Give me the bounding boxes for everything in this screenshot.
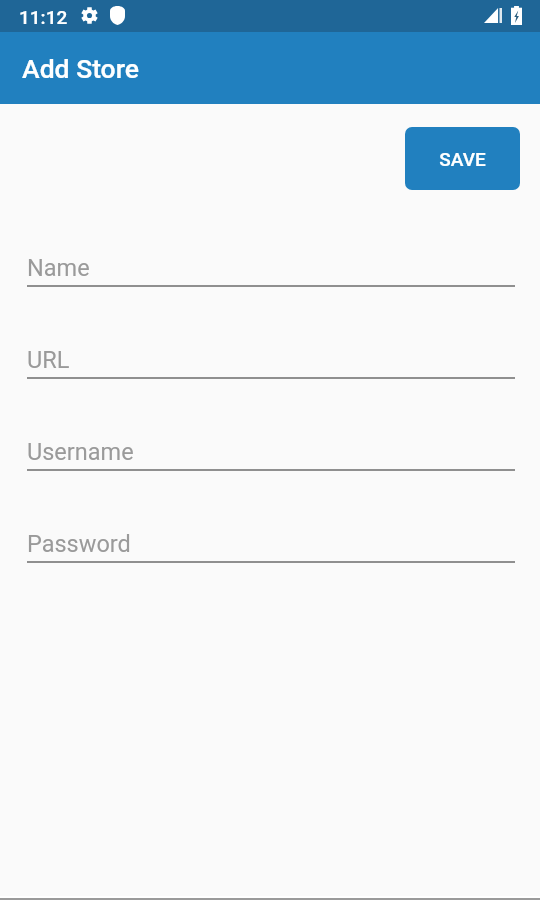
- button[interactable]: URL: [27, 329, 515, 379]
- staticText: Add Store: [22, 53, 139, 84]
- button[interactable]: Name: [27, 237, 515, 287]
- button[interactable]: Password: [27, 513, 515, 563]
- staticText: Name: [27, 254, 90, 282]
- staticText: URL: [27, 346, 70, 374]
- other: Settings: [81, 7, 98, 24]
- button[interactable]: Username: [27, 421, 515, 471]
- other: Battery charging: [511, 6, 522, 25]
- other: Security: [110, 6, 125, 25]
- staticText: Password: [27, 530, 131, 558]
- staticText: 11:12: [19, 6, 68, 28]
- button[interactable]: SAVE: [405, 127, 520, 190]
- other: Signal strength: [484, 8, 502, 23]
- staticText: SAVE: [439, 148, 486, 170]
- staticText: Username: [27, 438, 134, 466]
